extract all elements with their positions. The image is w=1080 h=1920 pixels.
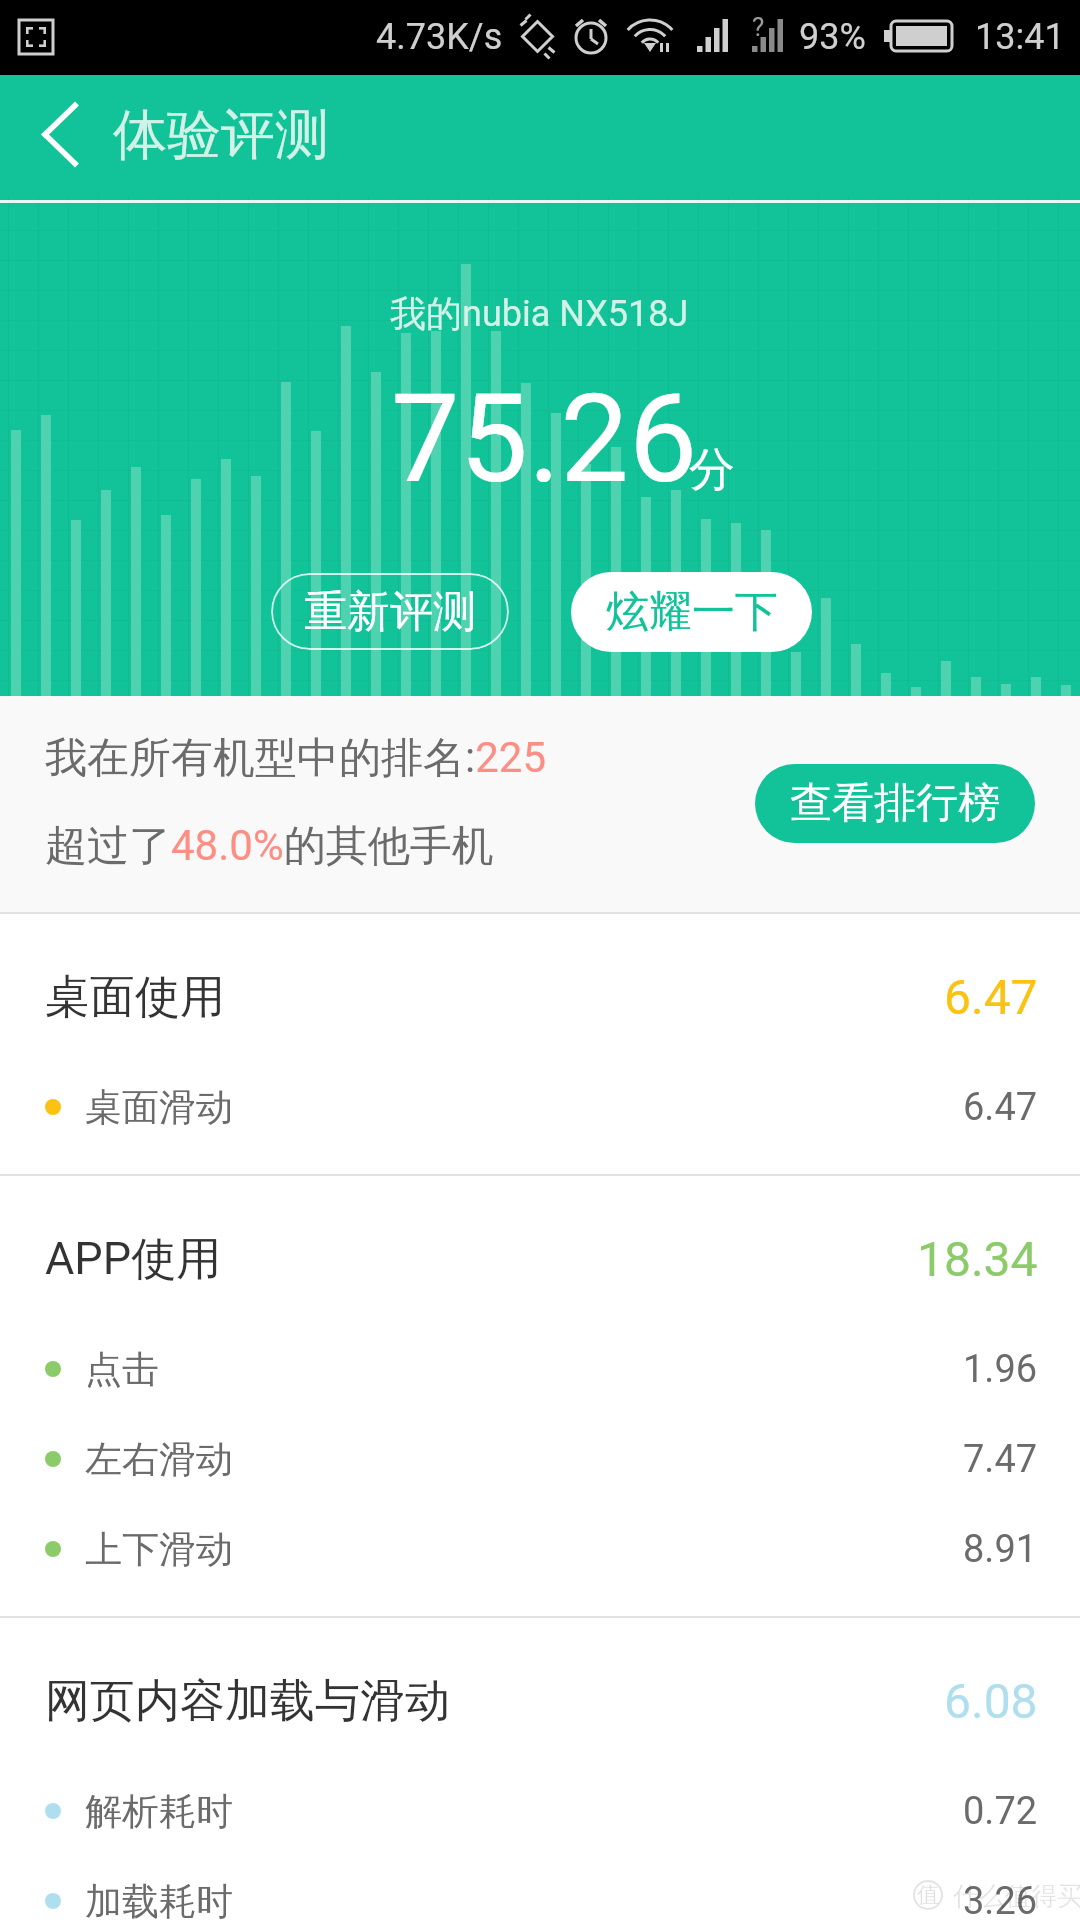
staticText: 我的nubia NX518J bbox=[390, 291, 689, 336]
button[interactable]: APP使用 bbox=[0, 1224, 1080, 1294]
staticText: 我在所有机型中的排名:225 bbox=[45, 732, 546, 785]
staticText: 4.73K/s bbox=[376, 16, 503, 58]
staticText: 什么值得买 bbox=[953, 1880, 1080, 1913]
staticText: 0.72 bbox=[963, 1789, 1038, 1834]
button[interactable]: Back bbox=[0, 75, 110, 192]
staticText: 6.47 bbox=[944, 969, 1038, 1025]
staticText: 93% bbox=[799, 16, 866, 58]
staticText: 体验评测 bbox=[113, 101, 329, 169]
staticText: 1.96 bbox=[963, 1347, 1038, 1392]
staticText: 6.47 bbox=[963, 1085, 1038, 1130]
staticText: 值 bbox=[917, 1881, 939, 1909]
staticText: 重新评测 bbox=[304, 585, 476, 639]
staticText: 3.26 bbox=[963, 1879, 1038, 1920]
staticText: 查看排行榜 bbox=[790, 777, 1000, 830]
staticText: 18.34 bbox=[917, 1231, 1038, 1287]
staticText: 桌面滑动 bbox=[85, 1084, 233, 1131]
button[interactable]: 解析耗时 bbox=[0, 1767, 1080, 1855]
staticText: 分 bbox=[689, 441, 735, 499]
staticText: 点击 bbox=[85, 1346, 159, 1393]
button[interactable]: 查看排行榜 bbox=[755, 764, 1035, 843]
staticText: 解析耗时 bbox=[85, 1788, 233, 1835]
button[interactable]: 点击 bbox=[0, 1325, 1080, 1413]
staticText: ? bbox=[752, 12, 765, 42]
staticText: 上下滑动 bbox=[85, 1526, 233, 1573]
button[interactable]: 重新评测 bbox=[271, 573, 509, 650]
staticText: 13:41 bbox=[975, 16, 1065, 58]
staticText: 左右滑动 bbox=[85, 1436, 233, 1483]
staticText: 超过了48.0%的其他手机 bbox=[45, 820, 494, 873]
button[interactable]: 桌面滑动 bbox=[0, 1063, 1080, 1151]
button[interactable]: 炫耀一下 bbox=[571, 572, 812, 652]
button[interactable]: 桌面使用 bbox=[0, 962, 1080, 1032]
button[interactable]: 加载耗时 bbox=[0, 1857, 1080, 1920]
staticText: 8.91 bbox=[963, 1527, 1038, 1572]
staticText: 7.47 bbox=[963, 1437, 1038, 1482]
staticText: 75.26 bbox=[391, 368, 698, 511]
staticText: 加载耗时 bbox=[85, 1878, 233, 1920]
staticText: APP使用 bbox=[45, 1231, 222, 1288]
staticText: 6.08 bbox=[944, 1673, 1038, 1729]
button[interactable]: 网页内容加载与滑动 bbox=[0, 1666, 1080, 1736]
staticText: 网页内容加载与滑动 bbox=[45, 1673, 450, 1730]
staticText: 炫耀一下 bbox=[606, 585, 778, 639]
button[interactable]: 上下滑动 bbox=[0, 1505, 1080, 1593]
staticText: 桌面使用 bbox=[45, 969, 225, 1026]
button[interactable]: 左右滑动 bbox=[0, 1415, 1080, 1503]
